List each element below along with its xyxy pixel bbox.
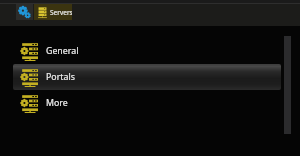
button[interactable]: Servers (34, 4, 72, 20)
staticText: Portals (46, 71, 75, 83)
staticText: General (46, 45, 79, 57)
button[interactable]: Settings (16, 4, 33, 20)
staticText: Servers (50, 8, 72, 17)
staticText: More (46, 97, 68, 109)
button[interactable]: More (0, 90, 300, 116)
button[interactable]: General (0, 38, 300, 64)
button[interactable]: Portals (0, 64, 300, 90)
